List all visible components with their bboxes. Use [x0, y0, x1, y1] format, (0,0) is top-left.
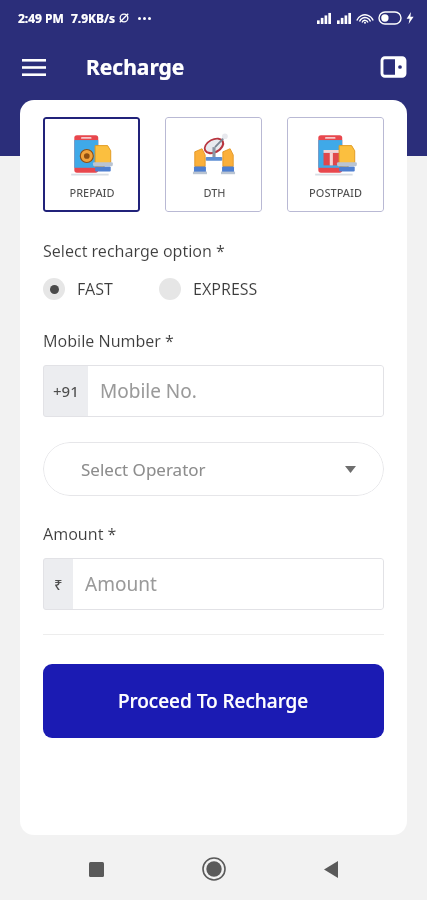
staticText: PREPAID: [69, 185, 115, 200]
button[interactable]: Recent apps: [74, 847, 118, 891]
button[interactable]: Select Operator: [43, 442, 384, 496]
button[interactable]: Wallet: [373, 46, 415, 88]
staticText: Mobile Number *: [43, 330, 174, 352]
staticText: Amount *: [43, 523, 117, 545]
button[interactable]: PREPAID: [43, 117, 140, 212]
button[interactable]: ₹: [43, 558, 384, 610]
staticText: Proceed To Recharge: [118, 688, 309, 714]
staticText: 7.9KB/s: [71, 10, 116, 26]
staticText: +91: [53, 381, 79, 401]
staticText: 2:49 PM: [18, 10, 64, 26]
button[interactable]: +91: [43, 365, 384, 417]
staticText: ₹: [54, 574, 63, 594]
button[interactable]: Back: [309, 847, 353, 891]
staticText: Mobile No.: [100, 378, 197, 404]
staticText: Select Operator: [81, 458, 206, 481]
button[interactable]: Home: [192, 847, 236, 891]
staticText: FAST: [77, 278, 113, 300]
button[interactable]: Open navigation menu: [13, 46, 55, 88]
button[interactable]: FAST: [43, 278, 113, 300]
staticText: Recharge: [86, 53, 185, 82]
button[interactable]: POSTPAID: [287, 117, 384, 212]
staticText: Amount: [85, 571, 157, 597]
staticText: DTH: [203, 185, 226, 200]
staticText: EXPRESS: [193, 278, 258, 300]
button[interactable]: EXPRESS: [159, 278, 258, 300]
button[interactable]: DTH: [165, 117, 262, 212]
staticText: POSTPAID: [309, 185, 362, 200]
staticText: Select recharge option *: [43, 240, 225, 262]
button[interactable]: Proceed To Recharge: [43, 664, 384, 738]
